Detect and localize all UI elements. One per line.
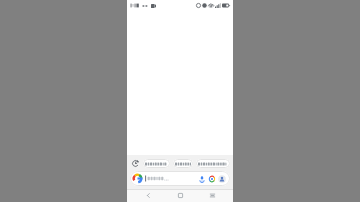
button[interactable]: discord bot list bbox=[196, 159, 230, 168]
button[interactable]: Account bbox=[217, 174, 227, 184]
button[interactable]: Voice search bbox=[130, 171, 230, 186]
button[interactable]: Google Lens bbox=[207, 174, 217, 184]
button[interactable]: Voice search bbox=[197, 174, 207, 184]
button[interactable]: Recent searches bbox=[130, 158, 140, 168]
button[interactable]: Recent apps bbox=[201, 189, 223, 202]
button[interactable]: arcane list bbox=[143, 159, 170, 168]
button[interactable]: Back bbox=[137, 189, 159, 202]
button[interactable]: Home bbox=[169, 189, 191, 202]
button[interactable]: arcane bbox=[173, 159, 193, 168]
